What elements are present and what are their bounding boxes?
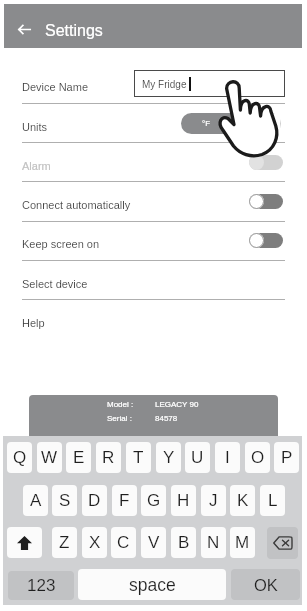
staticText: °F xyxy=(202,119,211,128)
button[interactable]: W xyxy=(37,442,62,473)
staticText: T xyxy=(133,448,144,467)
button[interactable]: A xyxy=(23,485,48,516)
staticText: Y xyxy=(163,448,175,467)
button[interactable]: F xyxy=(112,485,137,516)
button[interactable]: J xyxy=(201,485,226,516)
button[interactable]: Keep screen on xyxy=(22,238,100,250)
staticText: C xyxy=(117,533,130,552)
staticText: J xyxy=(209,491,218,510)
button[interactable]: N xyxy=(201,527,226,558)
staticText: I xyxy=(225,448,230,467)
button[interactable]: Toggle xyxy=(249,194,283,209)
button[interactable]: Alarm xyxy=(22,160,51,172)
staticText: N xyxy=(207,533,220,552)
button[interactable]: O xyxy=(245,442,270,473)
staticText: X xyxy=(89,533,101,552)
button[interactable]: Back xyxy=(9,14,39,44)
button[interactable]: C xyxy=(111,527,136,558)
button[interactable]: R xyxy=(96,442,121,473)
button[interactable]: Shift xyxy=(7,527,42,558)
button[interactable]: Device Name xyxy=(22,81,89,93)
staticText: U xyxy=(191,448,204,467)
staticText: Serial : xyxy=(107,414,155,423)
staticText: H xyxy=(177,491,190,510)
button[interactable]: U xyxy=(185,442,210,473)
button[interactable]: H xyxy=(171,485,196,516)
staticText: F xyxy=(119,491,130,510)
button[interactable]: P xyxy=(274,442,299,473)
button[interactable]: L xyxy=(260,485,285,516)
button[interactable]: E xyxy=(66,442,91,473)
staticText: A xyxy=(30,491,42,510)
staticText: Q xyxy=(13,448,27,467)
staticText: 84578 xyxy=(155,414,178,423)
button[interactable]: K xyxy=(230,485,255,516)
staticText: Z xyxy=(59,533,70,552)
staticText: M xyxy=(235,533,250,552)
staticText: E xyxy=(73,448,85,467)
staticText: K xyxy=(237,491,249,510)
button[interactable]: OK xyxy=(231,569,300,600)
button[interactable]: Backspace xyxy=(267,527,298,559)
staticText: LEGACY 90 xyxy=(155,400,199,409)
button[interactable]: Y xyxy=(156,442,181,473)
staticText: S xyxy=(59,491,71,510)
button[interactable]: Select device xyxy=(22,278,88,290)
button[interactable]: V xyxy=(141,527,166,558)
staticText: 123 xyxy=(27,576,56,595)
staticText: G xyxy=(147,491,161,510)
button[interactable]: My Fridge xyxy=(134,70,285,97)
button[interactable]: space xyxy=(78,569,226,600)
staticText: O xyxy=(251,448,265,467)
staticText: L xyxy=(268,491,278,510)
button[interactable]: °F xyxy=(181,113,281,134)
staticText: V xyxy=(148,533,160,552)
button[interactable]: Toggle xyxy=(249,233,283,248)
staticText: Model : xyxy=(107,400,155,409)
button[interactable]: I xyxy=(215,442,240,473)
button[interactable]: B xyxy=(171,527,196,558)
staticText: My Fridge xyxy=(142,79,187,90)
button[interactable]: Units xyxy=(22,121,48,133)
button[interactable]: M xyxy=(230,527,255,558)
button[interactable]: T xyxy=(126,442,151,473)
button[interactable]: Connect automatically xyxy=(22,199,131,211)
button[interactable]: Q xyxy=(7,442,32,473)
button[interactable]: Z xyxy=(52,527,77,558)
button[interactable]: Toggle xyxy=(249,155,283,170)
staticText: P xyxy=(281,448,293,467)
button[interactable]: G xyxy=(141,485,166,516)
staticText: W xyxy=(41,448,58,467)
staticText: OK xyxy=(254,576,278,594)
staticText: space xyxy=(129,575,176,595)
staticText: B xyxy=(178,533,190,552)
staticText: Settings xyxy=(45,22,103,40)
button[interactable]: 123 xyxy=(8,571,74,600)
staticText: D xyxy=(88,491,101,510)
button[interactable]: D xyxy=(82,485,107,516)
button[interactable]: Help xyxy=(22,317,45,329)
button[interactable]: X xyxy=(82,527,107,558)
staticText: R xyxy=(102,448,115,467)
button[interactable]: S xyxy=(52,485,77,516)
